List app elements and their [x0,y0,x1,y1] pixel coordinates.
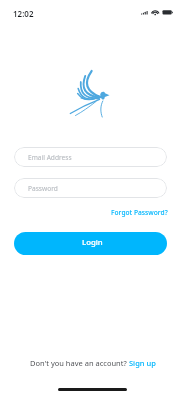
staticText: Don't you have an account? [30,358,129,368]
staticText: Forgot Password? [111,208,168,217]
staticText: Password [28,184,58,193]
button[interactable]: Sign up [129,358,156,368]
staticText: Email Address [28,153,72,162]
button[interactable]: Forgot Password? [107,204,172,221]
staticText: 12:02 [13,8,34,19]
staticText: Sign up [129,358,156,368]
staticText: Login [82,237,103,248]
button[interactable]: Login [14,232,167,255]
button[interactable]: Email Address [14,147,167,167]
button[interactable]: Password [14,178,167,198]
